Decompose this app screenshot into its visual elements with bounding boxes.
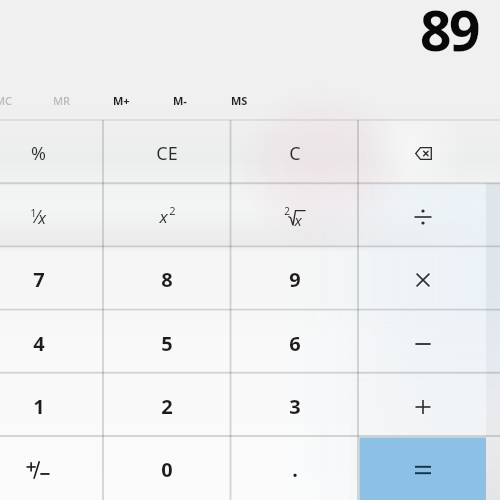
other: Equals	[412, 459, 434, 481]
staticText: MS	[231, 93, 248, 108]
other: Subtract	[412, 333, 434, 355]
button[interactable]: Add	[358, 373, 488, 436]
button[interactable]: 1	[0, 183, 103, 246]
staticText: 1	[33, 393, 45, 420]
button[interactable]: 6	[231, 310, 359, 373]
staticText: MR	[53, 93, 71, 108]
button[interactable]: Equals	[358, 436, 488, 499]
staticText: x	[294, 210, 302, 230]
button[interactable]: Subtract	[358, 310, 488, 373]
button[interactable]: M+	[98, 86, 144, 115]
other: Divide	[412, 206, 434, 228]
button[interactable]: Divide	[358, 183, 488, 246]
button[interactable]: Multiply	[358, 246, 488, 309]
button[interactable]: 3	[231, 373, 359, 436]
staticText: ⁄	[36, 204, 39, 229]
button[interactable]: 2	[103, 373, 231, 436]
other: Add	[412, 396, 434, 418]
staticText: 9	[289, 266, 301, 293]
staticText: MC	[0, 93, 13, 108]
other: Multiply	[412, 269, 434, 291]
staticText: .	[292, 456, 298, 483]
staticText: x	[38, 207, 46, 229]
button[interactable]: 4	[0, 310, 103, 373]
staticText: 8	[161, 266, 173, 293]
staticText: CE	[156, 141, 178, 166]
button[interactable]: 5	[103, 310, 231, 373]
button[interactable]: 1	[0, 373, 103, 436]
button[interactable]: CE	[103, 120, 231, 183]
staticText: 1	[30, 205, 37, 220]
button[interactable]: MC	[0, 86, 27, 115]
staticText: %	[31, 141, 46, 166]
staticText: x	[159, 205, 168, 228]
button[interactable]: M-	[157, 86, 203, 115]
staticText: C	[289, 141, 301, 166]
staticText: 2	[169, 203, 176, 218]
staticText: 0	[161, 456, 173, 483]
button[interactable]: .	[231, 436, 359, 499]
button[interactable]: C	[231, 120, 359, 183]
button[interactable]: 8	[103, 246, 231, 309]
other: Backspace	[415, 147, 432, 160]
staticText: 2	[284, 204, 290, 218]
staticText: 7	[33, 266, 45, 293]
button[interactable]: x	[103, 183, 231, 246]
button[interactable]: 7	[0, 246, 103, 309]
staticText: 89	[420, 0, 478, 67]
staticText: 4	[33, 330, 45, 357]
button[interactable]: 9	[231, 246, 359, 309]
button[interactable]: %	[0, 120, 103, 183]
button[interactable]: 2	[231, 183, 359, 246]
staticText: 5	[161, 330, 173, 357]
button[interactable]: 0	[103, 436, 231, 499]
staticText: 3	[289, 393, 301, 420]
staticText: M+	[113, 93, 130, 108]
staticText: 6	[289, 330, 301, 357]
button[interactable]: MS	[216, 86, 262, 115]
button[interactable]	[0, 436, 103, 499]
button[interactable]: MR	[39, 86, 85, 115]
button[interactable]: Backspace	[358, 120, 488, 183]
staticText: 2	[161, 393, 173, 420]
staticText: M-	[173, 93, 187, 108]
